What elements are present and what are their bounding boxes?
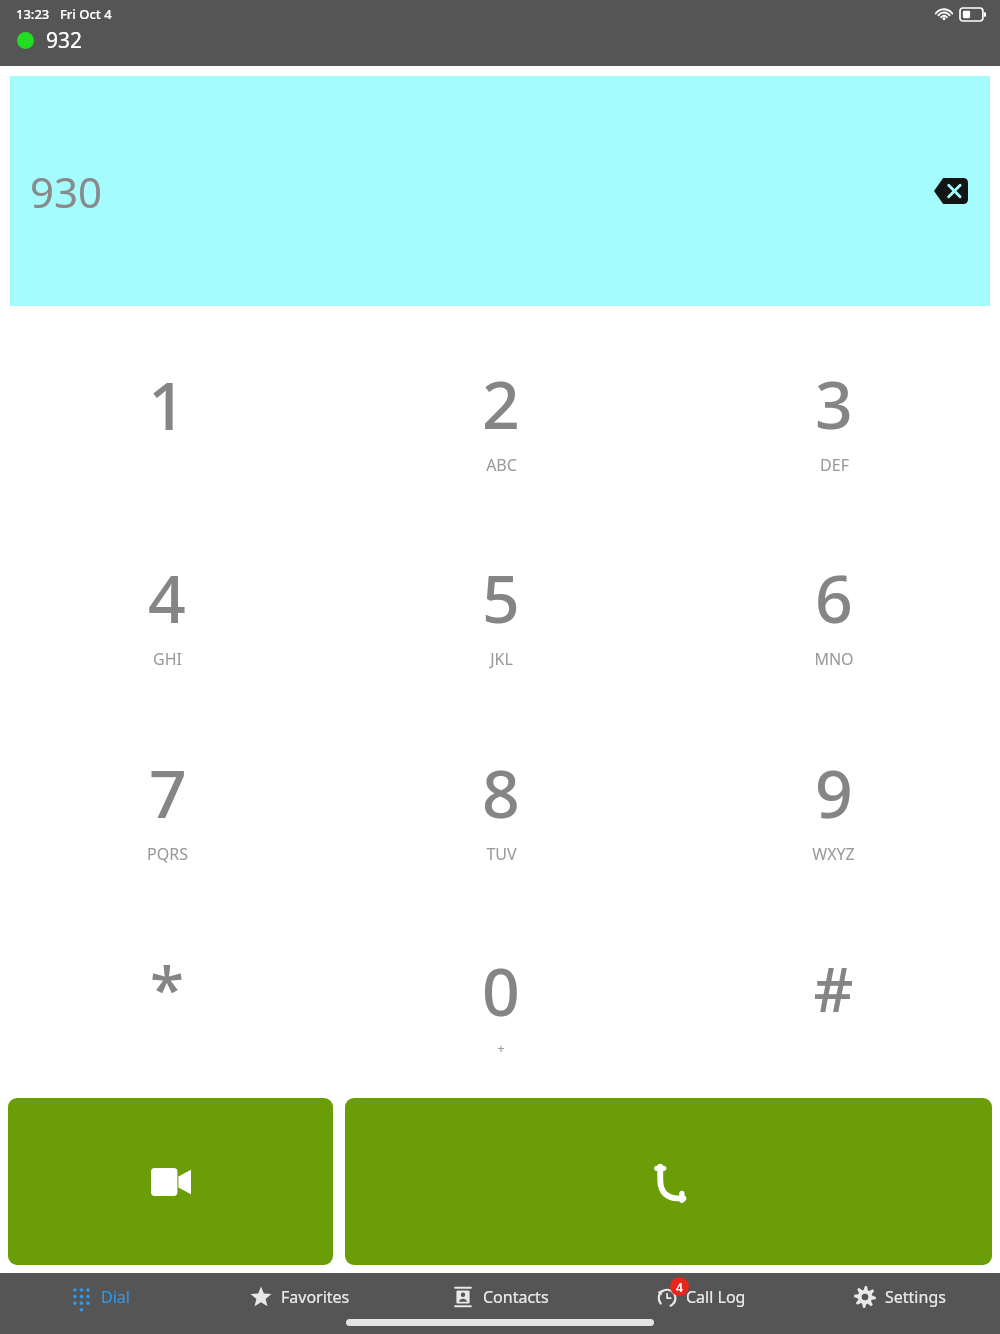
button[interactable]: 2: [334, 320, 667, 514]
staticText: 13:23: [16, 5, 50, 23]
button[interactable]: 8: [334, 708, 667, 903]
staticText: 2: [482, 358, 520, 448]
staticText: 8: [482, 747, 520, 837]
button[interactable]: 7: [0, 708, 334, 903]
staticText: TUV: [486, 843, 517, 865]
staticText: *: [150, 946, 184, 1030]
button[interactable]: 930: [10, 76, 990, 306]
button[interactable]: Call: [345, 1098, 992, 1265]
staticText: 4: [676, 1279, 683, 1295]
staticText: 6: [815, 552, 853, 642]
staticText: 0: [482, 945, 520, 1035]
staticText: MNO: [814, 648, 854, 670]
button[interactable]: #: [667, 903, 1000, 1098]
button[interactable]: 0: [334, 903, 667, 1098]
staticText: GHI: [153, 648, 182, 670]
staticText: WXYZ: [812, 843, 855, 865]
staticText: 5: [482, 552, 520, 642]
staticText: ABC: [486, 454, 517, 476]
staticText: +: [497, 1039, 505, 1057]
button[interactable]: 1: [0, 320, 334, 514]
staticText: Call Log: [686, 1286, 746, 1308]
staticText: Favorites: [281, 1286, 350, 1308]
button[interactable]: Settings: [800, 1273, 1000, 1321]
staticText: 7: [149, 747, 187, 837]
staticText: Dial: [101, 1286, 130, 1308]
button[interactable]: 3: [667, 320, 1000, 514]
button[interactable]: 4: [600, 1273, 800, 1321]
staticText: 4: [148, 552, 186, 642]
staticText: 932: [46, 26, 83, 55]
button[interactable]: 6: [667, 514, 1000, 708]
button[interactable]: 5: [334, 514, 667, 708]
button[interactable]: Backspace: [928, 168, 974, 214]
button[interactable]: Video call: [8, 1098, 333, 1265]
staticText: 1: [148, 359, 186, 449]
staticText: Fri Oct 4: [60, 5, 112, 23]
staticText: 930: [30, 163, 103, 220]
button[interactable]: 9: [667, 708, 1000, 903]
button[interactable]: Favorites: [200, 1273, 400, 1321]
button[interactable]: *: [0, 903, 334, 1098]
staticText: 3: [815, 358, 853, 448]
staticText: DEF: [820, 454, 849, 476]
staticText: PQRS: [147, 843, 188, 865]
staticText: Contacts: [483, 1286, 549, 1308]
staticText: #: [813, 946, 854, 1030]
staticText: Settings: [885, 1286, 946, 1308]
button[interactable]: Dial: [0, 1273, 200, 1321]
staticText: 9: [815, 747, 853, 837]
staticText: JKL: [490, 648, 513, 670]
button[interactable]: 4: [0, 514, 334, 708]
button[interactable]: Contacts: [400, 1273, 600, 1321]
